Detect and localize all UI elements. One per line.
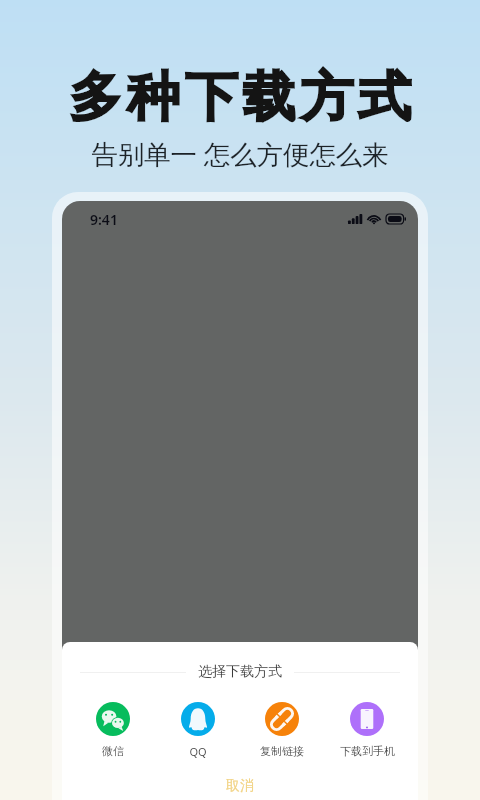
button[interactable]: QQ — [156, 702, 240, 759]
staticText: 9:41 — [90, 210, 118, 229]
button[interactable]: 下载到手机 — [325, 702, 409, 758]
staticText: 取消 — [226, 777, 254, 795]
staticText: 微信 — [102, 744, 124, 758]
staticText: 下载到手机 — [340, 744, 395, 758]
staticText: 告别单一 怎么方便怎么来 — [91, 136, 389, 172]
staticText: 多种下载方式 — [69, 64, 416, 131]
button[interactable]: 取消 — [62, 771, 418, 800]
staticText: 复制链接 — [260, 744, 304, 758]
staticText: QQ — [189, 744, 207, 759]
button[interactable]: 复制链接 — [240, 702, 324, 758]
button[interactable]: 微信 — [71, 702, 155, 758]
staticText: 选择下载方式 — [198, 663, 282, 681]
